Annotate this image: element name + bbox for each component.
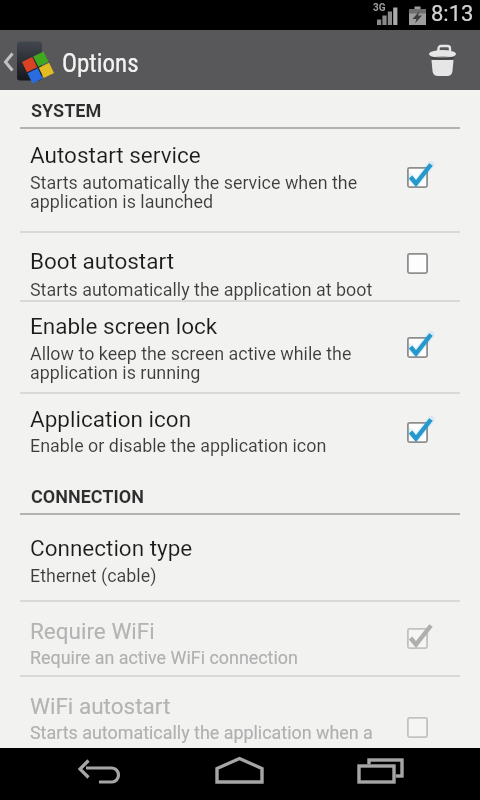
staticText: CONNECTION: [31, 486, 144, 507]
staticText: 8:13: [431, 1, 474, 27]
staticText: WiFi autostart: [30, 693, 171, 719]
staticText: Require WiFi: [30, 618, 155, 644]
button[interactable]: [416, 30, 472, 90]
button[interactable]: [200, 748, 280, 800]
staticText: Starts automatically the application whe…: [30, 722, 373, 743]
button[interactable]: [0, 129, 480, 231]
button[interactable]: [0, 301, 480, 392]
button[interactable]: [59, 748, 139, 800]
button[interactable]: [0, 30, 56, 90]
staticText: 3G: [373, 2, 386, 14]
staticText: Starts automatically the application at …: [30, 279, 373, 300]
staticText: Connection type: [30, 535, 193, 561]
staticText: Options: [62, 49, 139, 78]
button: [0, 601, 480, 675]
staticText: Require an active WiFi connection: [30, 647, 298, 668]
button: [0, 676, 480, 748]
staticText: Autostart service: [30, 142, 201, 168]
staticText: Ethernet (cable): [30, 565, 157, 586]
button[interactable]: [0, 232, 480, 300]
staticText: Starts automatically the service when th…: [30, 172, 358, 213]
staticText: Allow to keep the screen active while th…: [30, 343, 352, 384]
staticText: Boot autostart: [30, 248, 174, 274]
staticText: SYSTEM: [31, 100, 102, 121]
staticText: Application icon: [30, 406, 192, 432]
button[interactable]: [0, 394, 480, 470]
button[interactable]: [340, 748, 420, 800]
button[interactable]: [0, 516, 480, 600]
staticText: Enable or disable the application icon: [30, 435, 327, 456]
staticText: Enable screen lock: [30, 313, 218, 339]
